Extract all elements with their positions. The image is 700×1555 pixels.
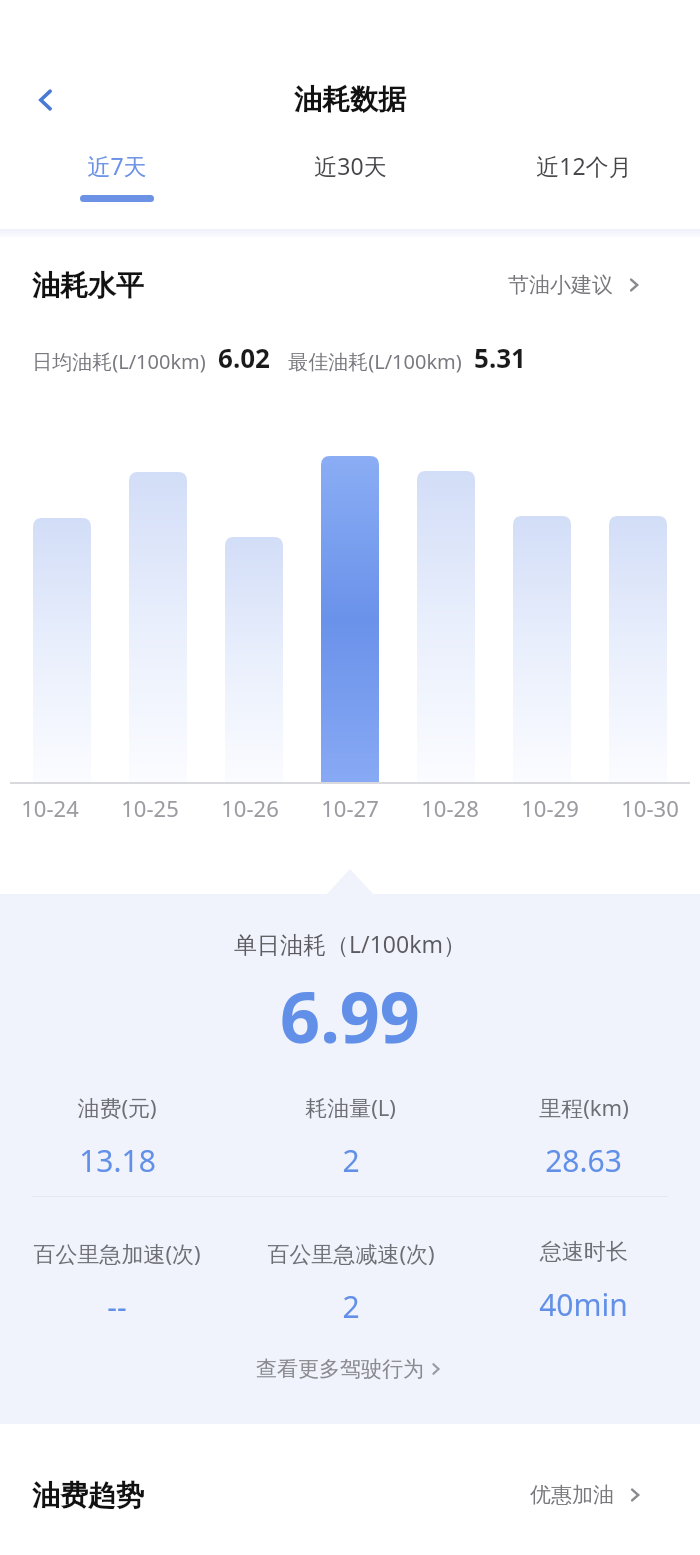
- staticText: 10-29: [521, 793, 579, 823]
- staticText: 10-25: [121, 793, 179, 823]
- staticText: 日均油耗(L/100km): [32, 348, 206, 375]
- staticText: 查看更多驾驶行为: [256, 1356, 424, 1382]
- staticText: 油费趋势: [32, 1478, 144, 1513]
- staticText: 近7天: [87, 150, 147, 181]
- staticText: 油费(元): [77, 1092, 157, 1122]
- staticText: 10-24: [21, 793, 79, 823]
- button[interactable]: 优惠加油: [530, 1482, 644, 1508]
- staticText: 6.99: [280, 968, 420, 1063]
- staticText: 百公里急减速(次): [267, 1238, 435, 1268]
- staticText: 里程(km): [539, 1092, 629, 1122]
- staticText: 怠速时长: [540, 1238, 628, 1266]
- staticText: 10-26: [221, 793, 279, 823]
- staticText: 40min: [539, 1284, 628, 1325]
- staticText: 28.63: [545, 1140, 622, 1181]
- button[interactable]: Back: [22, 76, 70, 124]
- staticText: 6.02: [218, 340, 270, 375]
- button[interactable]: 近7天: [0, 150, 234, 230]
- button[interactable]: 近12个月: [467, 150, 700, 230]
- staticText: 5.31: [474, 340, 526, 375]
- staticText: 百公里急加速(次): [33, 1238, 201, 1268]
- staticText: 近30天: [314, 150, 387, 181]
- staticText: 10-28: [421, 793, 479, 823]
- staticText: 油耗数据: [294, 82, 406, 117]
- staticText: 优惠加油: [530, 1482, 614, 1508]
- button[interactable]: 近30天: [234, 150, 467, 230]
- staticText: 油耗水平: [32, 268, 144, 303]
- staticText: 单日油耗（L/100km）: [234, 928, 466, 959]
- staticText: --: [107, 1286, 127, 1327]
- staticText: 10-27: [321, 793, 379, 823]
- staticText: 2: [342, 1140, 360, 1181]
- staticText: 最佳油耗(L/100km): [288, 348, 462, 375]
- button[interactable]: 查看更多驾驶行为: [0, 1356, 700, 1382]
- staticText: 近12个月: [536, 150, 632, 181]
- staticText: 13.18: [79, 1140, 156, 1181]
- staticText: 耗油量(L): [305, 1092, 396, 1122]
- staticText: 10-30: [621, 793, 679, 823]
- staticText: 2: [342, 1286, 360, 1327]
- button[interactable]: 节油小建议: [508, 272, 643, 298]
- staticText: 节油小建议: [508, 272, 613, 298]
